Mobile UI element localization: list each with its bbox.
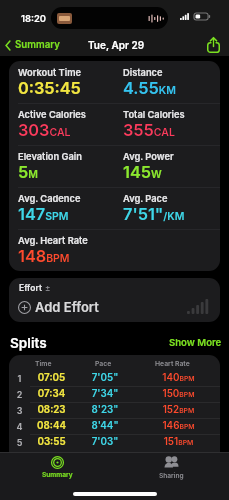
staticText: 148BPM: [18, 246, 70, 266]
staticText: Avg. Heart Rate: [18, 235, 88, 246]
staticText: 151BPM: [137, 436, 220, 448]
staticText: 7'34": [73, 388, 137, 400]
button[interactable]: Show More: [165, 335, 224, 351]
staticText: 303CAL: [18, 120, 71, 140]
staticText: 147SPM: [18, 204, 69, 224]
button[interactable]: 5: [9, 434, 220, 450]
button[interactable]: Effort: [9, 278, 220, 322]
staticText: 2: [9, 389, 30, 400]
staticText: Workout Time: [18, 67, 82, 78]
staticText: 8'23": [73, 404, 137, 416]
staticText: Active Calories: [18, 109, 86, 120]
button[interactable]: 2: [9, 386, 220, 402]
staticText: Effort: [19, 283, 42, 293]
staticText: Summary: [42, 471, 73, 479]
staticText: Avg. Cadence: [18, 193, 81, 204]
staticText: 146BPM: [137, 420, 220, 432]
staticText: 7'51"/KM: [123, 204, 185, 224]
staticText: 5: [9, 437, 30, 448]
staticText: Summary: [15, 39, 60, 51]
staticText: Total Calories: [123, 109, 185, 120]
staticText: Splits: [10, 335, 47, 351]
button[interactable]: 1: [9, 370, 220, 386]
staticText: 08:23: [30, 404, 73, 416]
staticText: 7'03": [73, 436, 137, 448]
staticText: 1: [9, 373, 30, 384]
button[interactable]: Sharing: [114, 453, 229, 480]
staticText: 145W: [123, 162, 162, 182]
staticText: 08:44: [30, 420, 73, 432]
staticText: 0:35:45: [18, 78, 81, 98]
staticText: 03:55: [30, 436, 73, 448]
staticText: 8'44": [73, 420, 137, 432]
staticText: 7'05": [73, 372, 137, 384]
staticText: 07:34: [30, 388, 73, 400]
staticText: 152BPM: [137, 404, 220, 416]
staticText: 4.55KM: [123, 78, 176, 98]
staticText: 07:05: [30, 372, 73, 384]
staticText: Add Effort: [35, 299, 99, 315]
staticText: 150BPM: [137, 388, 220, 400]
staticText: 5M: [18, 162, 38, 182]
staticText: Time: [35, 359, 52, 367]
button[interactable]: Share: [199, 34, 229, 56]
staticText: 140BPM: [137, 372, 220, 384]
staticText: Avg. Pace: [123, 193, 168, 204]
staticText: 18:20: [21, 13, 47, 24]
staticText: Show More: [169, 337, 222, 349]
button[interactable]: 4: [9, 418, 220, 434]
staticText: 3: [9, 405, 30, 416]
staticText: Avg. Power: [123, 151, 174, 162]
button[interactable]: Summary: [0, 36, 66, 54]
staticText: Heart Rate: [155, 359, 190, 367]
staticText: 4: [9, 421, 30, 432]
button[interactable]: 3: [9, 402, 220, 418]
button[interactable]: Summary: [0, 453, 114, 479]
staticText: Distance: [123, 67, 163, 78]
staticText: ±: [45, 283, 51, 293]
staticText: 355CAL: [123, 120, 175, 140]
staticText: Tue, Apr 29: [88, 39, 145, 51]
staticText: Pace: [95, 359, 112, 367]
staticText: Elevation Gain: [18, 151, 82, 162]
staticText: Sharing: [159, 472, 184, 480]
